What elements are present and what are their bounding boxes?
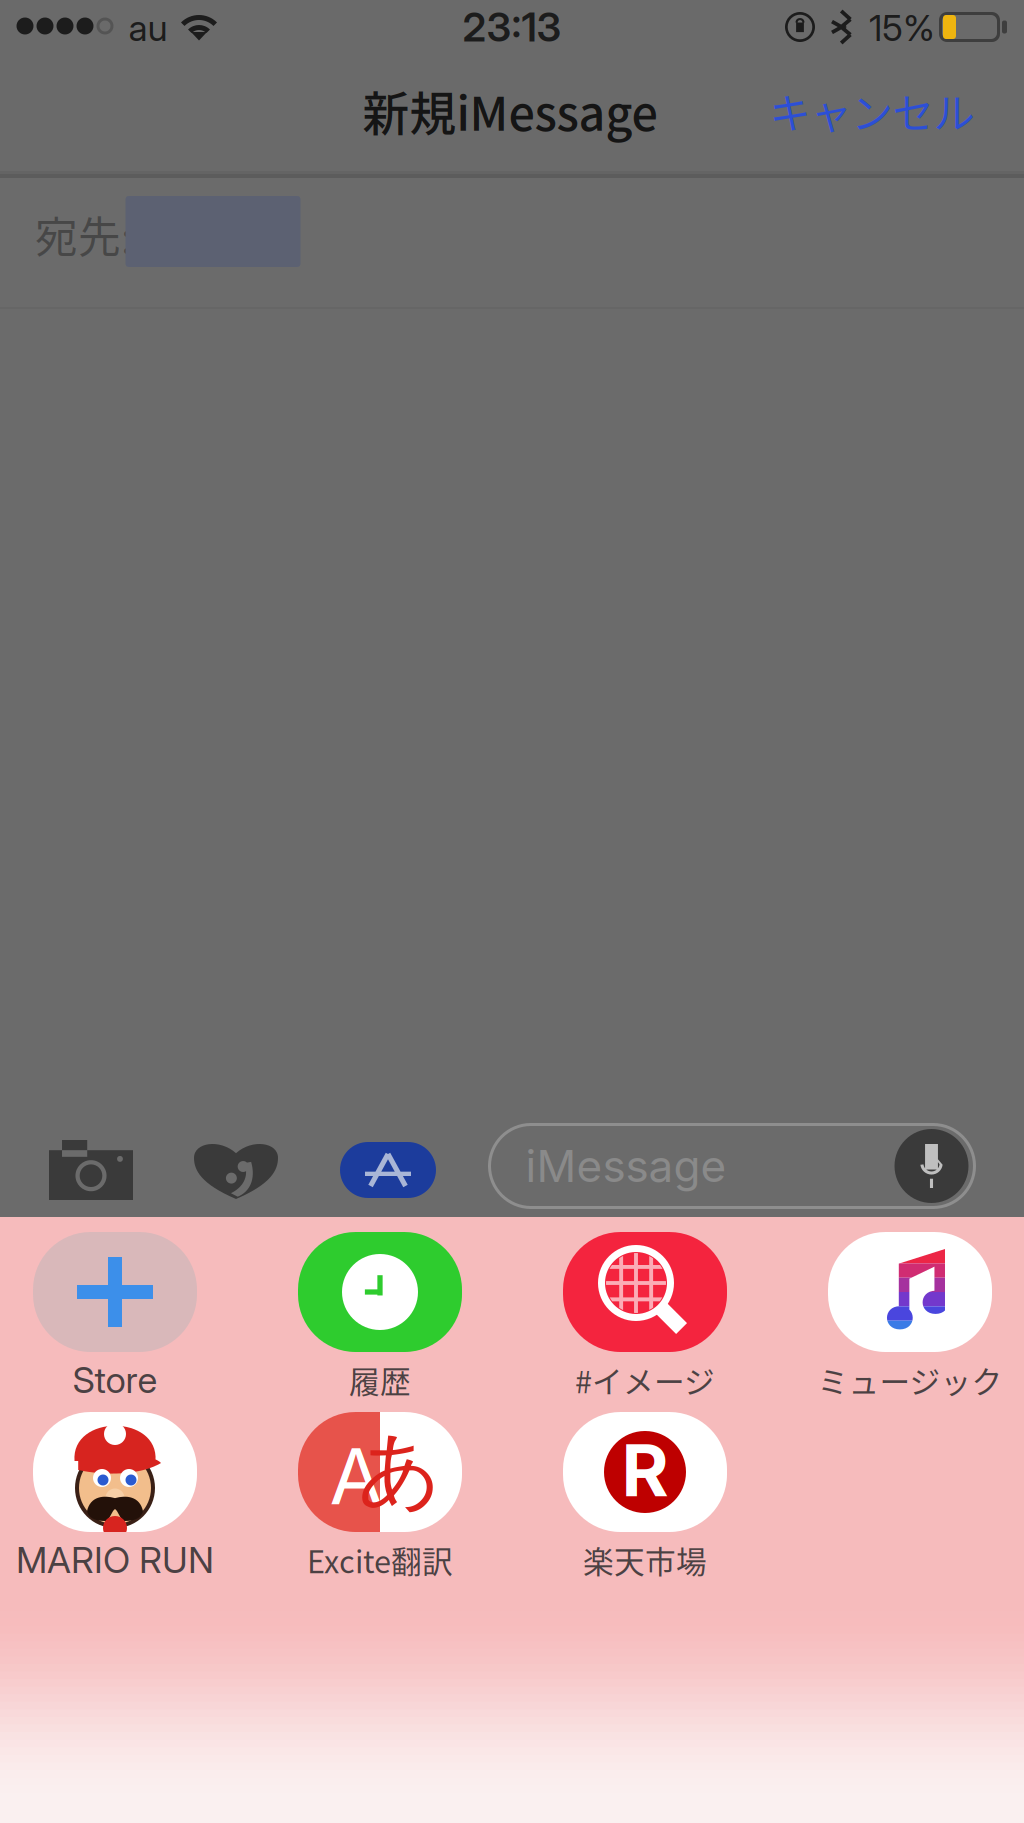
staticText: MARIO RUN xyxy=(16,1538,214,1582)
button[interactable]: R xyxy=(518,1425,772,1605)
staticText: Excite翻訳 xyxy=(307,1538,453,1582)
staticText: Store xyxy=(72,1358,157,1402)
button[interactable]: ミュージック xyxy=(783,1245,1024,1425)
staticText: #イメージ xyxy=(575,1358,715,1402)
staticText: 楽天市場 xyxy=(583,1538,707,1582)
button[interactable]: A xyxy=(253,1425,507,1605)
staticText: R xyxy=(621,1426,668,1513)
staticText: 履歴 xyxy=(349,1358,411,1402)
button[interactable]: iMessage App Store xyxy=(326,1121,450,1218)
button[interactable]: MARIO RUN xyxy=(0,1425,242,1605)
button[interactable]: Store xyxy=(0,1245,242,1425)
staticText: ミュージック xyxy=(817,1358,1002,1402)
button[interactable]: Digital Touch xyxy=(174,1121,298,1218)
staticText: 23:13 xyxy=(462,3,561,51)
button[interactable]: #イメージ xyxy=(518,1245,772,1425)
staticText: 15% xyxy=(869,6,935,50)
button[interactable]: Camera xyxy=(26,1121,156,1218)
button[interactable]: キャンセル xyxy=(737,50,1007,171)
staticText: 宛先: xyxy=(35,204,133,265)
staticText: A xyxy=(329,1429,382,1523)
button[interactable]: Message xyxy=(489,1117,974,1214)
staticText: 新規iMessage xyxy=(362,77,657,144)
staticText: au xyxy=(128,6,167,50)
staticText: あ xyxy=(357,1418,442,1522)
staticText: キャンセル xyxy=(769,81,974,140)
staticText: iMessage xyxy=(525,1139,726,1193)
button[interactable]: 履歴 xyxy=(253,1245,507,1425)
